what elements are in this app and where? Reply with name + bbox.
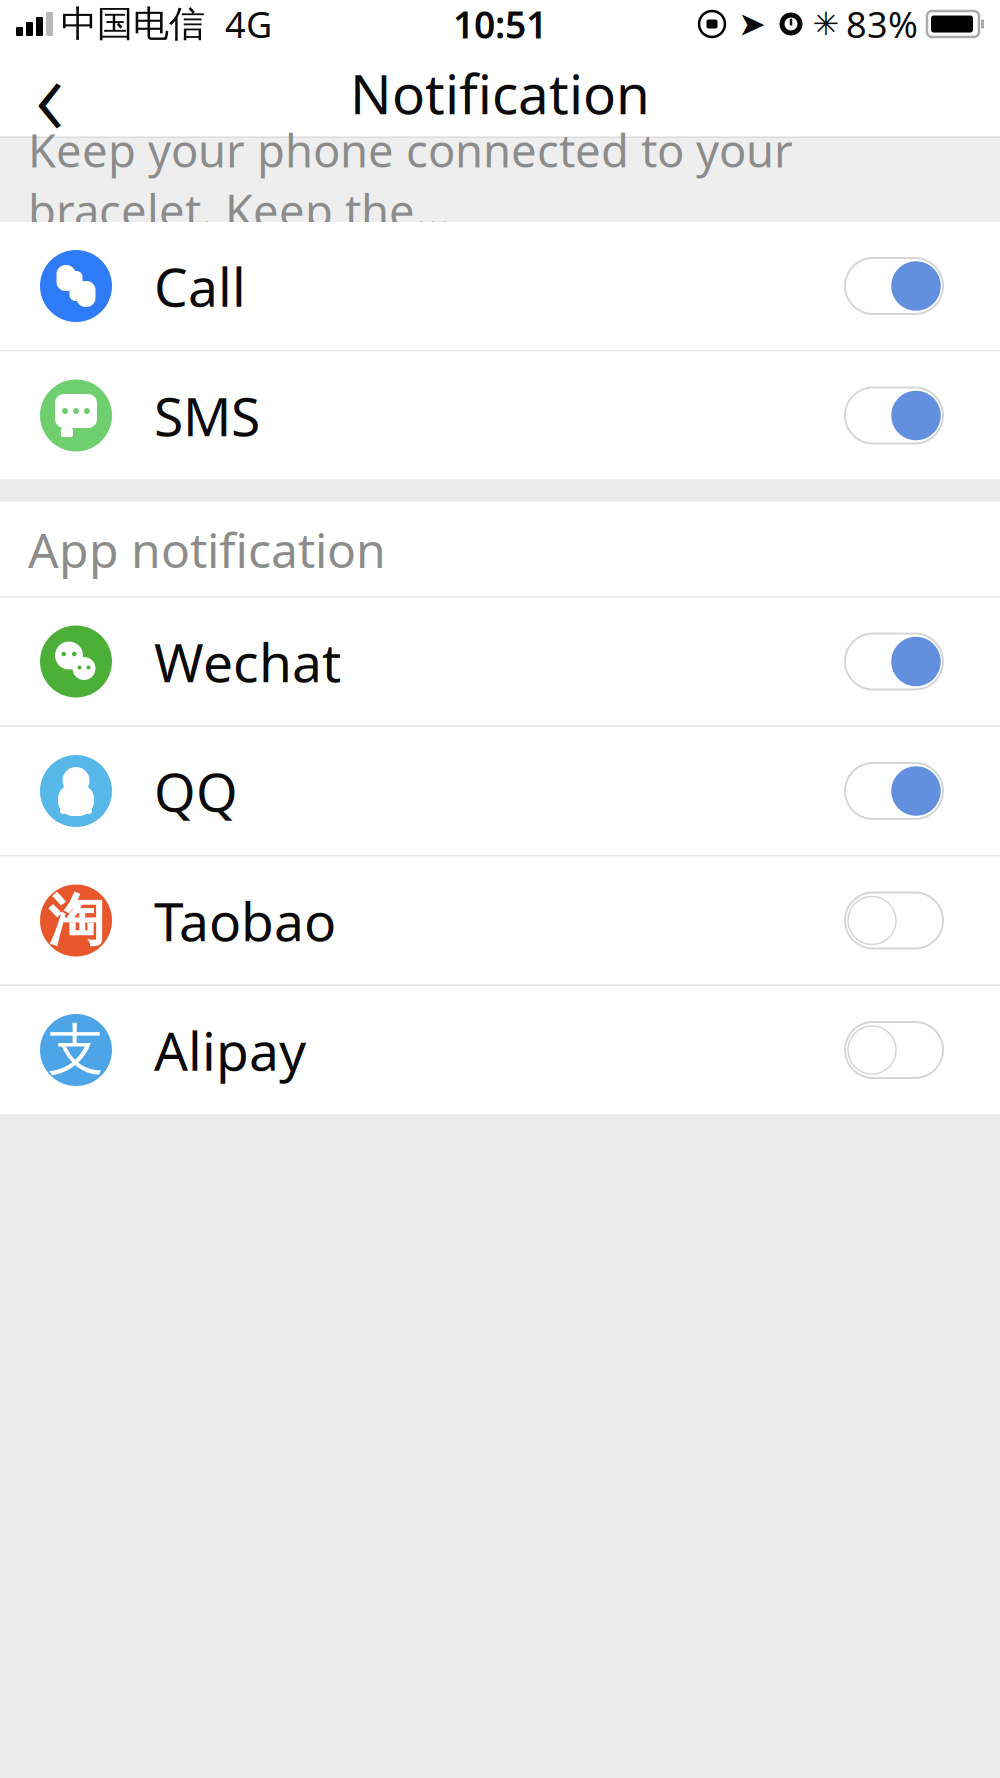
staticText: 83% (846, 0, 918, 48)
button[interactable]: QQ (0, 727, 1000, 855)
button[interactable]: Back (0, 48, 100, 138)
button[interactable]: 淘 (0, 856, 1000, 984)
button[interactable]: SMS (0, 351, 1000, 479)
button[interactable]: 支 (0, 986, 1000, 1114)
staticText: App notification (28, 518, 386, 581)
staticText: ‹ (35, 19, 65, 167)
staticText: ✳ (812, 6, 839, 42)
staticText: Alipay (154, 1015, 306, 1085)
staticText: 中国电信 (61, 2, 205, 46)
staticText: 10:51 (453, 0, 547, 49)
button[interactable]: 📞 (0, 222, 1000, 350)
staticText: Taobao (154, 885, 336, 956)
staticText: Wechat (154, 626, 341, 697)
staticText: Keep your phone connected to your bracel… (28, 120, 793, 240)
staticText: 4G (225, 0, 272, 48)
staticText: Notification (350, 57, 650, 129)
staticText: 淘 (48, 886, 104, 955)
staticText: ➤ (738, 5, 766, 43)
button[interactable]: Wechat (0, 597, 1000, 725)
staticText: Call (154, 251, 246, 321)
staticText: QQ (154, 756, 238, 826)
staticText: 支 (48, 1016, 104, 1084)
staticText: SMS (154, 380, 260, 451)
